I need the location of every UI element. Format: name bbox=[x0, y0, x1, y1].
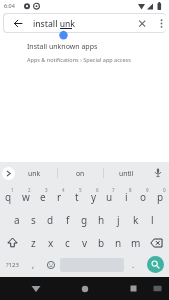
button[interactable]: e bbox=[36, 188, 49, 205]
staticText: f bbox=[66, 213, 70, 227]
staticText: z bbox=[31, 236, 36, 250]
button[interactable]: k bbox=[129, 211, 142, 228]
staticText: 6:04 bbox=[4, 2, 15, 9]
button[interactable] bbox=[42, 253, 59, 276]
staticText: unk bbox=[28, 169, 41, 178]
button[interactable]: c bbox=[61, 234, 74, 251]
button[interactable] bbox=[2, 167, 15, 180]
button[interactable]: h bbox=[95, 211, 108, 228]
button[interactable]: until bbox=[104, 162, 149, 184]
staticText: r bbox=[57, 190, 62, 204]
staticText: a bbox=[14, 213, 20, 227]
button[interactable]: r bbox=[53, 188, 66, 205]
button[interactable] bbox=[0, 231, 25, 254]
button[interactable]: q bbox=[2, 188, 15, 205]
staticText: 7 bbox=[112, 188, 115, 193]
button[interactable]: z bbox=[27, 234, 40, 251]
button[interactable]: w bbox=[19, 188, 32, 205]
staticText: 1 bbox=[11, 188, 14, 193]
staticText: Apps & notifications › Special app acces… bbox=[27, 56, 131, 63]
button[interactable]: t bbox=[70, 188, 83, 205]
button[interactable]: n bbox=[112, 234, 125, 251]
staticText: ?123 bbox=[6, 261, 19, 269]
staticText: g bbox=[81, 213, 88, 227]
button[interactable]: u bbox=[103, 188, 116, 205]
button[interactable]: d bbox=[44, 211, 57, 228]
button[interactable]: unk bbox=[14, 162, 54, 184]
staticText: 9 bbox=[146, 188, 149, 193]
staticText: h bbox=[98, 213, 105, 227]
button[interactable]: Install unknown apps bbox=[0, 40, 169, 64]
button[interactable]: . bbox=[125, 253, 142, 276]
staticText: 3 bbox=[45, 188, 48, 193]
button[interactable] bbox=[135, 17, 149, 30]
staticText: y bbox=[91, 190, 97, 204]
button[interactable] bbox=[123, 278, 143, 299]
button[interactable]: ?123 bbox=[0, 253, 25, 276]
staticText: m bbox=[131, 236, 141, 250]
staticText: on bbox=[76, 169, 85, 178]
staticText: l bbox=[151, 213, 154, 227]
button[interactable]: s bbox=[27, 211, 40, 228]
button[interactable] bbox=[150, 165, 166, 181]
staticText: 5 bbox=[79, 188, 82, 193]
button[interactable]: a bbox=[10, 211, 23, 228]
button[interactable]: f bbox=[61, 211, 74, 228]
button[interactable] bbox=[11, 18, 27, 29]
button[interactable]: j bbox=[112, 211, 125, 228]
staticText: v bbox=[82, 236, 88, 250]
button[interactable]: i bbox=[120, 188, 133, 205]
staticText: 2 bbox=[28, 188, 31, 193]
staticText: n bbox=[115, 236, 122, 250]
staticText: . bbox=[132, 259, 135, 270]
button[interactable]: y bbox=[87, 188, 100, 205]
staticText: p bbox=[157, 190, 164, 204]
staticText: 8 bbox=[129, 188, 132, 193]
button[interactable]: g bbox=[78, 211, 91, 228]
button[interactable]: m bbox=[129, 234, 142, 251]
button[interactable]: p bbox=[154, 188, 167, 205]
staticText: c bbox=[65, 236, 70, 250]
staticText: k bbox=[133, 213, 139, 227]
staticText: w bbox=[22, 190, 30, 204]
staticText: q bbox=[5, 190, 12, 204]
staticText: 0 bbox=[163, 188, 166, 193]
button[interactable]: , bbox=[25, 253, 42, 276]
button[interactable] bbox=[150, 280, 165, 297]
button[interactable]: v bbox=[78, 234, 91, 251]
staticText: t bbox=[75, 190, 79, 204]
button[interactable] bbox=[75, 278, 95, 299]
button[interactable]: o bbox=[137, 188, 150, 205]
staticText: until bbox=[119, 169, 134, 178]
staticText: Install unknown apps bbox=[27, 42, 98, 52]
button[interactable]: x bbox=[44, 234, 57, 251]
staticText: 4 bbox=[62, 188, 65, 193]
button[interactable] bbox=[156, 17, 166, 30]
staticText: s bbox=[31, 213, 36, 227]
staticText: 6 bbox=[96, 188, 99, 193]
staticText: b bbox=[98, 236, 105, 250]
button[interactable]: l bbox=[146, 211, 159, 228]
button[interactable] bbox=[26, 278, 46, 299]
staticText: x bbox=[48, 236, 54, 250]
staticText: , bbox=[32, 259, 35, 270]
staticText: e bbox=[40, 190, 46, 204]
staticText: i bbox=[125, 190, 128, 204]
staticText: d bbox=[47, 213, 54, 227]
staticText: o bbox=[140, 190, 147, 204]
button[interactable] bbox=[144, 231, 169, 254]
staticText: j bbox=[117, 213, 120, 227]
button[interactable] bbox=[147, 256, 164, 273]
button[interactable]: on bbox=[58, 162, 103, 184]
staticText: u bbox=[106, 190, 113, 204]
staticText: install unk bbox=[33, 18, 76, 30]
button[interactable]: b bbox=[95, 234, 108, 251]
